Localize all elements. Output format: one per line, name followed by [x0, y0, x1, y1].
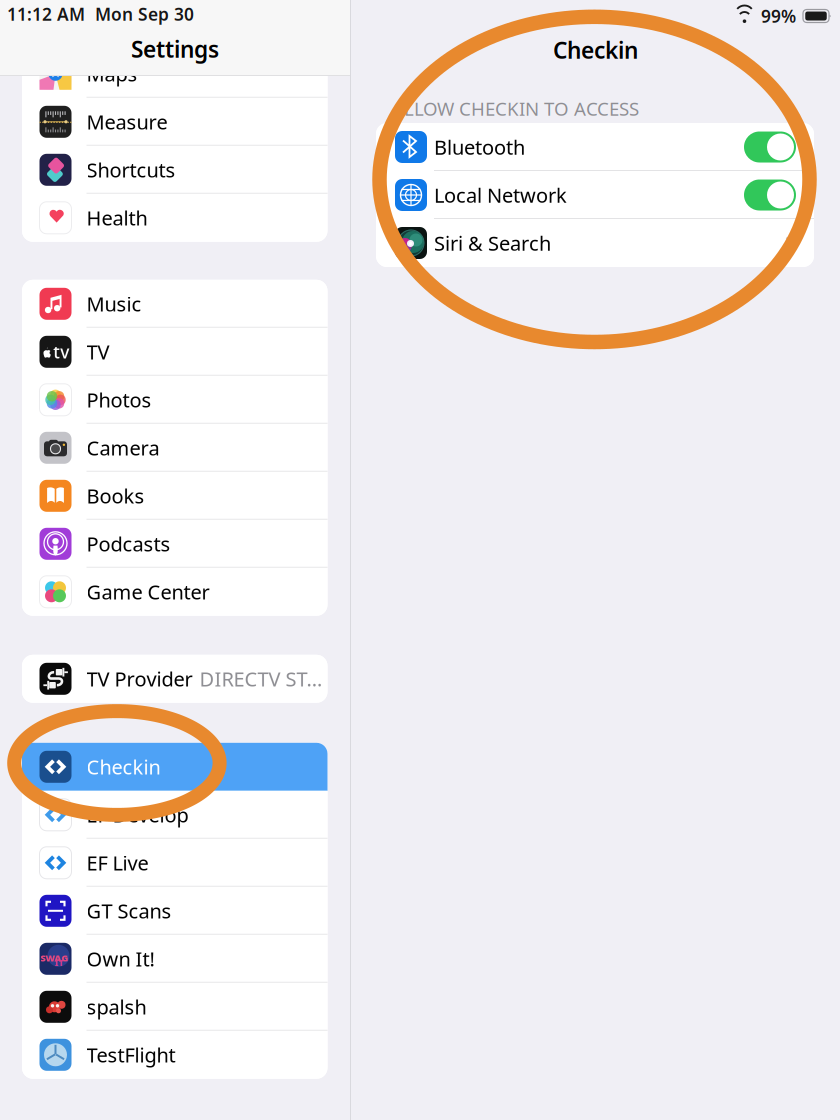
staticText: Own It! [86, 945, 154, 972]
staticText: ALLOW CHECKIN TO ACCESS [392, 96, 639, 121]
staticText: EF Develop [86, 801, 188, 828]
staticText: Photos [86, 386, 151, 413]
staticText: Measure [86, 108, 167, 135]
staticText: Camera [86, 434, 159, 461]
staticText: Game Center [86, 578, 209, 605]
button[interactable]: Local Network [376, 171, 814, 219]
button[interactable]: Maps [22, 50, 327, 98]
button[interactable]: Bluetooth [376, 123, 814, 171]
staticText: Music [86, 290, 141, 317]
staticText: Checkin [553, 35, 638, 65]
staticText: IT [55, 957, 64, 968]
staticText: Podcasts [86, 530, 170, 557]
staticText: Books [86, 482, 144, 509]
button[interactable]: Photos [22, 376, 327, 424]
button[interactable]: Health [22, 194, 327, 242]
button[interactable]: Game Center [22, 568, 327, 616]
button[interactable]: SWAG [22, 935, 327, 983]
staticText: 99% [761, 4, 796, 27]
staticText: TestFlight [86, 1041, 175, 1068]
staticText: SWAG [40, 952, 68, 964]
staticText: EF Live [86, 849, 148, 876]
staticText: GT Scans [86, 897, 171, 924]
staticText: Local Network [434, 182, 567, 208]
staticText: Shortcuts [86, 156, 175, 183]
staticText: 11:12 AM [7, 2, 85, 25]
button[interactable]: Books [22, 472, 327, 520]
button[interactable]: Measure [22, 98, 327, 146]
staticText: spalsh [86, 993, 146, 1020]
staticText: TV [86, 338, 109, 365]
button[interactable]: Checkin [22, 743, 327, 791]
staticText: tv [53, 340, 69, 363]
button[interactable]: spalsh [22, 983, 327, 1031]
button[interactable]: Siri & Search [376, 219, 814, 267]
button[interactable]: tv [22, 328, 327, 376]
staticText: TV Provider [86, 665, 192, 692]
staticText: Siri & Search [434, 230, 551, 256]
button[interactable]: Camera [22, 424, 327, 472]
button[interactable]: GT Scans [22, 887, 327, 935]
staticText: Checkin [86, 753, 160, 780]
button[interactable]: EF Live [22, 839, 327, 887]
staticText: Maps [86, 60, 137, 87]
staticText: Mon Sep 30 [95, 2, 194, 25]
button[interactable]: TV Provider [22, 655, 327, 703]
staticText: Health [86, 204, 147, 231]
button[interactable]: Music [22, 280, 327, 328]
button[interactable]: Podcasts [22, 520, 327, 568]
staticText: DIRECTV ST… [199, 665, 322, 692]
staticText: Settings [131, 34, 219, 64]
button[interactable]: EF Develop [22, 791, 327, 839]
button[interactable]: Shortcuts [22, 146, 327, 194]
staticText: Bluetooth [434, 134, 525, 160]
button[interactable]: TestFlight [22, 1031, 327, 1079]
